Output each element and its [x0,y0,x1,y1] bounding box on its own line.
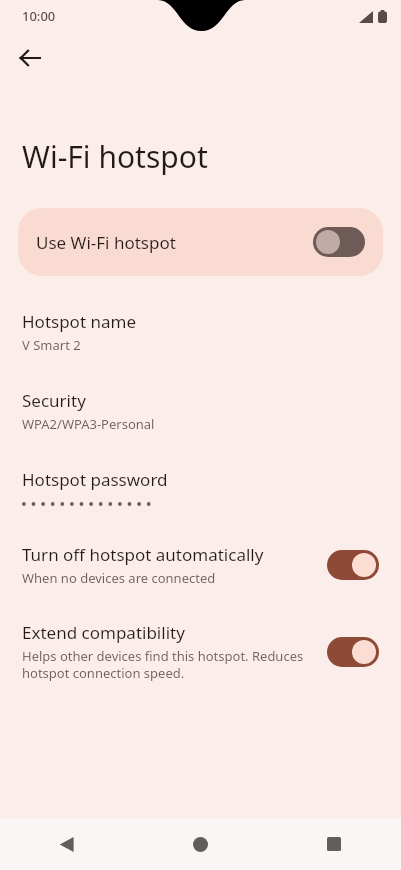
staticText: Hotspot password [22,468,168,491]
button[interactable]: Back [8,36,52,80]
button[interactable]: Use Wi-Fi hotspot [18,208,383,276]
button[interactable]: Extend compatibility [0,619,401,684]
button[interactable]: Back [0,818,133,870]
button[interactable]: Off [313,227,365,257]
staticText: Helps other devices find this hotspot. R… [22,647,313,682]
button[interactable]: Hotspot name [0,308,401,356]
button[interactable]: Home [133,818,267,870]
button[interactable]: Hotspot password [0,466,401,510]
staticText: Wi-Fi hotspot [22,136,208,177]
button[interactable]: Security [0,387,401,435]
button[interactable]: Recent apps [267,818,401,870]
staticText: Use Wi-Fi hotspot [36,231,313,254]
staticText: Extend compatibility [22,621,185,644]
staticText: WPA2/WPA3-Personal [22,415,155,433]
button[interactable]: On [327,550,379,580]
staticText: Turn off hotspot automatically [22,543,264,566]
staticText: Hotspot name [22,310,136,333]
button[interactable]: Turn off hotspot automatically [0,541,401,589]
staticText: Security [22,389,86,412]
staticText: 10:00 [22,7,56,25]
staticText: V Smart 2 [22,336,81,354]
button[interactable]: On [327,637,379,667]
staticText: When no devices are connected [22,569,216,587]
